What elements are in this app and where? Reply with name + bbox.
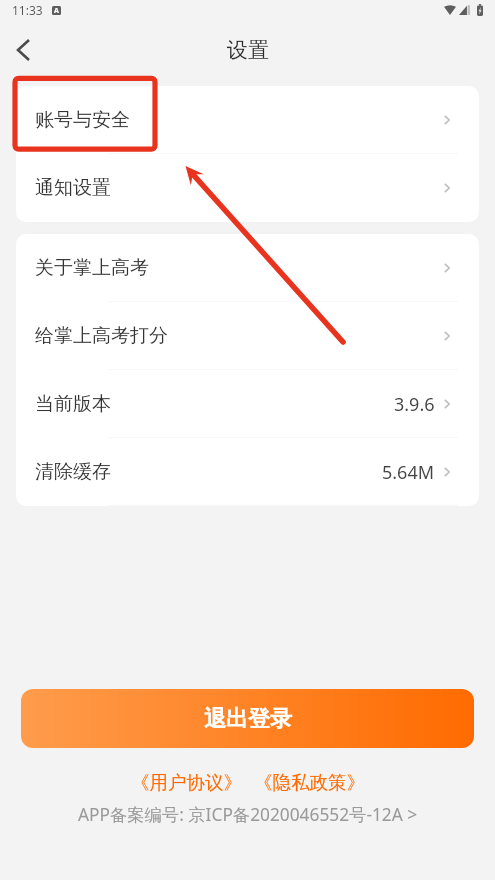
staticText: 账号与安全 bbox=[35, 108, 130, 132]
staticText: 3.9.6 bbox=[394, 392, 435, 417]
button[interactable]: 给掌上高考打分 bbox=[16, 302, 479, 370]
button[interactable]: 当前版本 bbox=[16, 370, 479, 438]
staticText: A bbox=[54, 6, 59, 15]
button[interactable]: 关于掌上高考 bbox=[16, 234, 479, 302]
staticText: 退出登录 bbox=[204, 705, 292, 733]
staticText: 清除缓存 bbox=[35, 460, 111, 484]
staticText: 《隐私政策》 bbox=[254, 771, 365, 794]
staticText: 《用户协议》 bbox=[131, 771, 242, 794]
button[interactable]: 《用户协议》 bbox=[129, 767, 244, 798]
staticText: 11:33 bbox=[12, 2, 43, 18]
button[interactable]: 清除缓存 bbox=[16, 438, 479, 506]
staticText: 通知设置 bbox=[35, 176, 111, 200]
staticText: 给掌上高考打分 bbox=[35, 324, 168, 348]
staticText: 当前版本 bbox=[35, 392, 111, 416]
staticText: 设置 bbox=[227, 37, 269, 63]
button[interactable]: Back bbox=[0, 27, 46, 73]
staticText: APP备案编号: 京ICP备2020046552号-12A > bbox=[78, 803, 418, 827]
staticText: 关于掌上高考 bbox=[35, 256, 149, 280]
button[interactable]: 账号与安全 bbox=[16, 86, 479, 154]
button[interactable]: 退出登录 bbox=[21, 689, 474, 748]
staticText: 5.64M bbox=[382, 460, 435, 485]
button[interactable]: APP备案编号: 京ICP备2020046552号-12A > bbox=[72, 799, 424, 831]
button[interactable]: 《隐私政策》 bbox=[252, 767, 367, 798]
button[interactable]: 通知设置 bbox=[16, 154, 479, 222]
